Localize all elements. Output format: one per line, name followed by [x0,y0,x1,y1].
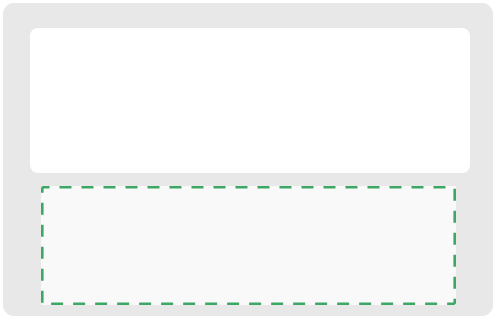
button[interactable]: Drop zone — add content here [41,186,456,305]
